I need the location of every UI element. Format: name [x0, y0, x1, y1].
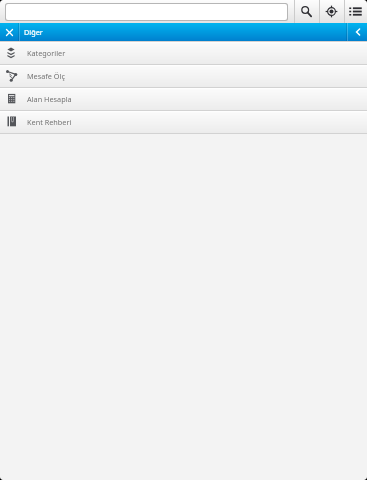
button[interactable]: Collapse: [348, 23, 367, 41]
button[interactable]: Kent Rehberi: [0, 111, 367, 133]
staticText: Diğer: [24, 27, 43, 37]
button[interactable]: Search: [294, 0, 319, 23]
staticText: Alan Hesapla: [27, 94, 72, 104]
button[interactable]: List: [344, 0, 367, 23]
button[interactable]: Kategoriler: [0, 42, 367, 64]
button[interactable]: Alan Hesapla: [0, 88, 367, 110]
staticText: Kent Rehberi: [27, 117, 72, 127]
staticText: Kategoriler: [27, 48, 66, 58]
button[interactable]: My location: [319, 0, 344, 23]
staticText: Mesafe Ölç: [27, 71, 65, 81]
button[interactable]: Close: [0, 23, 18, 41]
button[interactable]: Mesafe Ölç: [0, 65, 367, 87]
